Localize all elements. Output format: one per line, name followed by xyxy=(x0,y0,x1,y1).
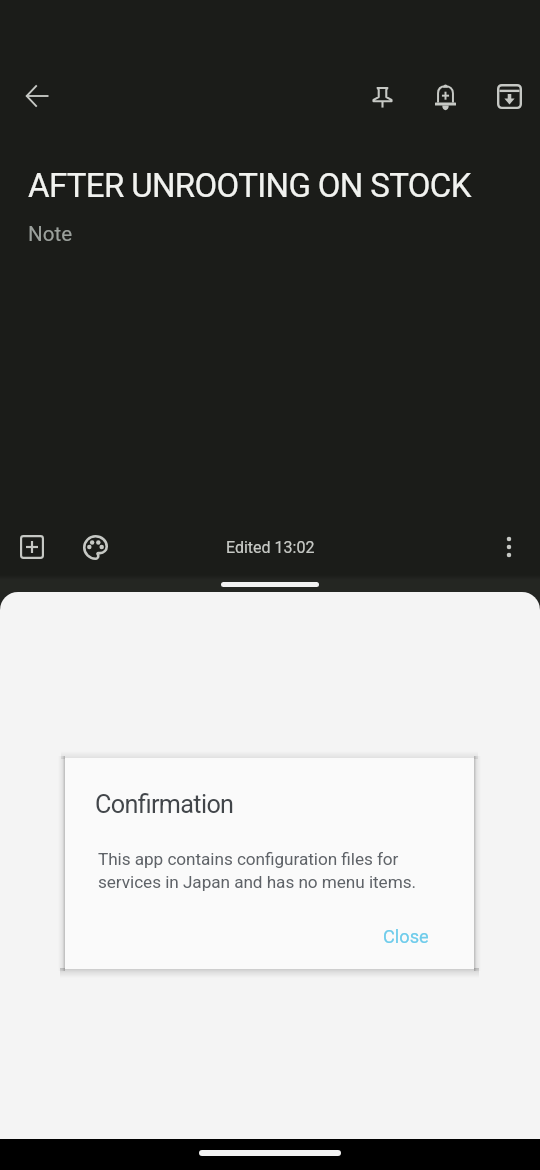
staticText: AFTER UNROOTING ON STOCK xyxy=(28,166,471,205)
button[interactable]: Back xyxy=(13,72,61,120)
button[interactable]: Close xyxy=(371,918,441,955)
button[interactable]: Note xyxy=(0,214,540,514)
button[interactable]: Archive xyxy=(485,72,533,120)
button[interactable]: Add item xyxy=(8,523,56,571)
staticText: Close xyxy=(383,926,429,947)
button[interactable]: Pin xyxy=(358,72,406,120)
button[interactable]: Add reminder xyxy=(421,72,469,120)
button[interactable]: Change colour xyxy=(71,523,119,571)
staticText: Confirmation xyxy=(95,790,234,820)
staticText: This app contains configuration files fo… xyxy=(98,849,416,892)
staticText: Note xyxy=(28,222,73,246)
staticText: Edited 13:02 xyxy=(226,538,315,557)
button[interactable]: AFTER UNROOTING ON STOCK xyxy=(0,160,540,210)
button[interactable]: More options xyxy=(485,523,533,571)
